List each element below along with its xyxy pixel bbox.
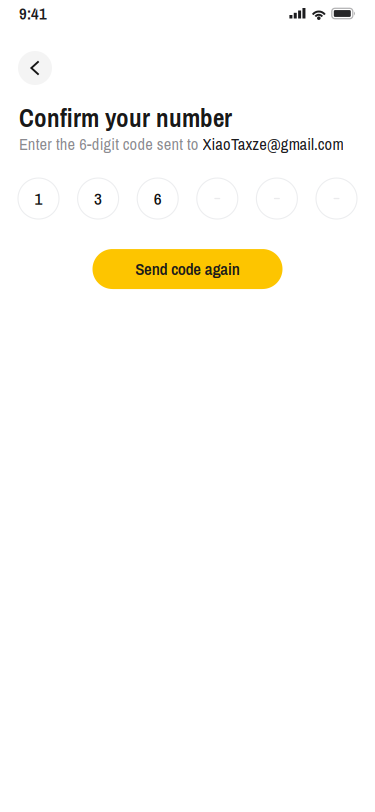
button[interactable]: Send code again: [92, 249, 282, 289]
staticText: Send code again: [135, 258, 240, 280]
staticText: 9:41: [19, 2, 47, 25]
button[interactable]: Back: [18, 51, 52, 85]
staticText: XiaoTaxze@gmail.com: [203, 133, 343, 155]
staticText: Enter the 6-digit code sent to: [19, 133, 203, 155]
staticText: Confirm your number: [19, 101, 232, 135]
staticText: 1: [34, 187, 42, 210]
staticText: 6: [154, 187, 162, 210]
staticText: 3: [94, 187, 102, 210]
